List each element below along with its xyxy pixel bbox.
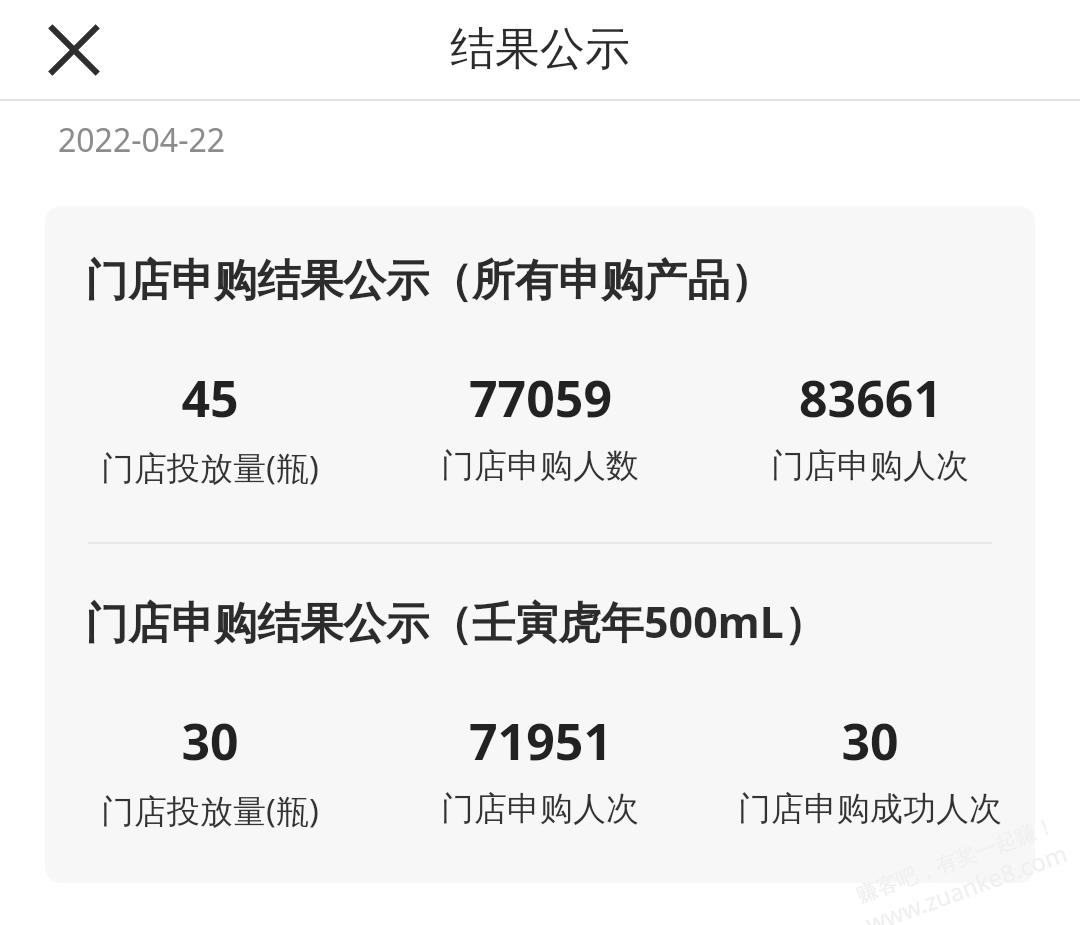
staticText: www.zuanke8.com <box>861 836 1072 925</box>
staticText: 门店投放量(瓶) <box>101 445 319 490</box>
staticText: 门店申购结果公示（所有申购产品） <box>85 254 773 308</box>
button[interactable]: 门店申购结果公示（所有申购产品） <box>45 206 1035 883</box>
staticText: 2022-04-22 <box>58 118 226 162</box>
staticText: 30 <box>181 707 239 775</box>
staticText: 门店申购人次 <box>441 788 639 830</box>
staticText: 门店申购人数 <box>441 445 639 487</box>
staticText: 45 <box>181 364 239 432</box>
staticText: 结果公示 <box>450 21 630 78</box>
staticText: 71951 <box>469 707 612 775</box>
button[interactable]: Close <box>26 2 122 98</box>
staticText: 门店申购人次 <box>771 445 969 487</box>
staticText: 30 <box>841 707 899 775</box>
staticText: 赚客吧，有奖一起赚！ <box>853 812 1059 908</box>
staticText: 门店投放量(瓶) <box>101 788 319 833</box>
staticText: 83661 <box>799 364 942 432</box>
staticText: 门店申购成功人次 <box>738 788 1002 830</box>
staticText: 门店申购结果公示（壬寅虎年500mL） <box>85 592 827 651</box>
staticText: 77059 <box>469 364 612 432</box>
